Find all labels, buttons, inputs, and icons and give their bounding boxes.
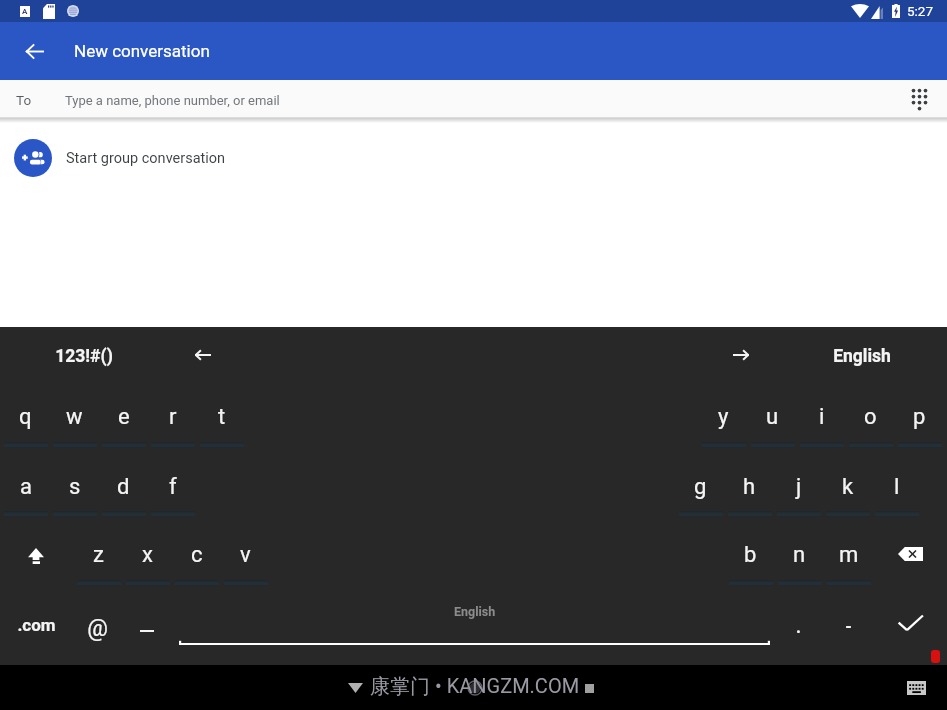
button[interactable]: Underscore [121,599,173,651]
button[interactable]: Dialpad [897,80,941,118]
staticText: i [819,404,825,430]
button[interactable]: y [699,388,748,448]
button[interactable]: p [895,388,944,448]
button[interactable]: w [50,388,99,448]
staticText: u [766,404,779,430]
staticText: y [718,404,729,430]
staticText: A [22,7,28,16]
button[interactable]: English [817,330,907,382]
button[interactable]: d [99,458,148,518]
button[interactable]: .com [1,599,71,651]
staticText: c [191,542,203,568]
button[interactable]: v [221,526,270,586]
staticText: e [118,404,130,430]
staticText: New conversation [74,41,210,61]
staticText: . [796,617,801,637]
staticText: - [845,616,852,636]
button[interactable]: q [1,388,50,448]
staticText: 123!#() [55,346,113,367]
staticText: g [694,474,707,500]
staticText: z [93,542,104,568]
staticText: To [16,92,32,108]
button[interactable]: o [846,388,895,448]
button[interactable]: h [725,458,774,518]
button[interactable]: Back [338,671,372,705]
button[interactable]: Backspace [880,528,940,580]
button[interactable]: l [872,458,921,518]
staticText: @ [87,615,108,642]
button[interactable]: t [197,388,246,448]
staticText: n [793,542,806,568]
staticText: t [218,404,226,430]
staticText: k [842,474,854,500]
button[interactable]: n [775,526,824,586]
button[interactable]: Move cursor left [177,329,229,381]
button[interactable]: i [797,388,846,448]
staticText: s [69,474,81,500]
staticText: 5:27 [907,3,934,19]
staticText: Type a name, phone number, or email [65,93,280,108]
button[interactable]: g [676,458,725,518]
staticText: English [833,346,891,367]
button[interactable]: s [50,458,99,518]
button[interactable]: Move cursor right [715,329,767,381]
button[interactable]: 123!#() [39,330,129,382]
staticText: x [142,542,153,568]
staticText: English [454,604,496,619]
button[interactable]: c [172,526,221,586]
staticText: m [839,542,859,568]
staticText: f [169,474,177,500]
button[interactable]: Show keyboard [899,671,933,705]
button[interactable]: @ [69,602,125,654]
staticText: Start group conversation [66,150,226,167]
staticText: r [169,404,177,430]
staticText: j [796,474,802,500]
staticText: q [19,404,32,430]
staticText: b [744,542,757,568]
button[interactable]: Home [461,674,488,701]
button[interactable]: x [123,526,172,586]
button[interactable]: Recents [580,679,598,697]
button[interactable]: e [99,388,148,448]
staticText: w [66,404,83,430]
button[interactable]: Shift [10,530,62,582]
staticText: h [743,474,756,500]
button[interactable]: Back [10,27,58,75]
staticText: a [20,474,32,500]
button[interactable]: Start group conversation [0,123,947,193]
staticText: v [240,542,251,568]
button[interactable]: Enter [882,597,938,649]
staticText: p [913,404,926,430]
button[interactable]: f [148,458,197,518]
button[interactable]: - [820,600,876,652]
staticText: d [117,474,130,500]
staticText: o [864,404,877,430]
button[interactable]: j [774,458,823,518]
button[interactable]: m [824,526,873,586]
button[interactable]: Space [179,595,770,655]
button[interactable]: k [823,458,872,518]
button[interactable]: b [726,526,775,586]
button[interactable]: To [0,80,947,118]
button[interactable]: u [748,388,797,448]
staticText: 康掌门 • KANGZM.COM [370,674,580,699]
button[interactable]: r [148,388,197,448]
staticText: .com [17,615,56,635]
staticText: l [894,474,900,500]
button[interactable]: z [74,526,123,586]
button[interactable]: . [770,601,826,653]
button[interactable]: a [1,458,50,518]
